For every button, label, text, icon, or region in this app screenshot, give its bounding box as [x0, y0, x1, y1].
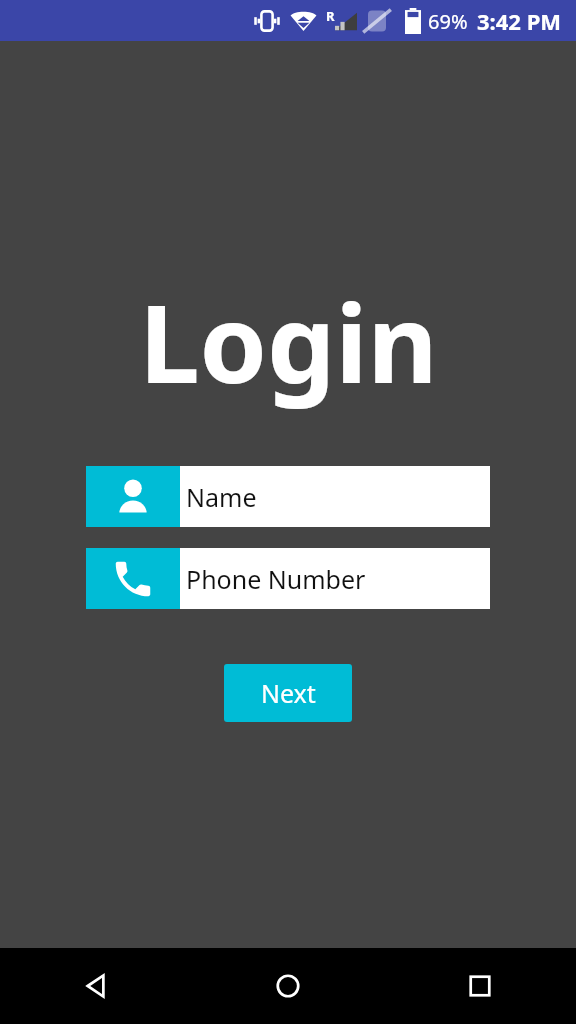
- button[interactable]: Home: [192, 948, 384, 1024]
- staticText: R: [326, 7, 335, 25]
- staticText: Name: [186, 480, 257, 514]
- other: Person: [111, 475, 155, 519]
- staticText: Login: [139, 268, 438, 415]
- button[interactable]: Back: [0, 948, 192, 1024]
- button[interactable]: Recent apps: [384, 948, 576, 1024]
- staticText: 3:42 PM: [477, 6, 562, 36]
- staticText: Next: [261, 676, 316, 710]
- button[interactable]: Phone: [86, 548, 490, 609]
- button[interactable]: Person: [86, 466, 490, 527]
- button[interactable]: Next: [224, 664, 352, 722]
- staticText: Phone Number: [186, 562, 366, 596]
- other: Phone: [110, 556, 156, 602]
- staticText: 69%: [428, 8, 468, 35]
